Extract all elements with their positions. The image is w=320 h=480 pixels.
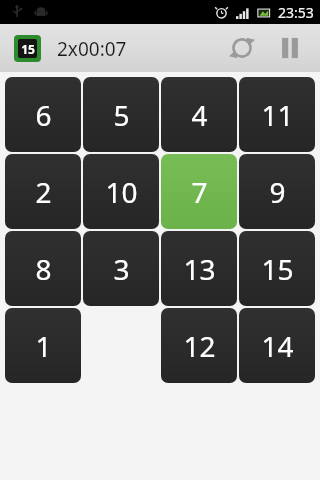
staticText: 4: [191, 96, 208, 134]
button[interactable]: 5: [83, 77, 159, 152]
button[interactable]: 2: [5, 154, 81, 229]
button[interactable]: 14: [239, 308, 315, 383]
button[interactable]: 6: [5, 77, 81, 152]
staticText: 14: [261, 327, 294, 365]
button[interactable]: 10: [83, 154, 159, 229]
staticText: 3: [113, 250, 130, 288]
staticText: 8: [35, 250, 52, 288]
button[interactable]: 7: [161, 154, 237, 229]
staticText: 5: [113, 96, 130, 134]
staticText: 6: [35, 96, 52, 134]
button[interactable]: 1: [5, 308, 81, 383]
staticText: 7: [191, 173, 208, 211]
button[interactable]: Restart: [218, 24, 266, 72]
button[interactable]: 11: [239, 77, 315, 152]
staticText: 10: [105, 173, 138, 211]
staticText: 15: [261, 250, 294, 288]
staticText: 12: [183, 327, 216, 365]
staticText: 23:53: [278, 3, 314, 22]
button[interactable]: 15: [239, 231, 315, 306]
button[interactable]: 12: [161, 308, 237, 383]
button[interactable]: 13: [161, 231, 237, 306]
staticText: 11: [261, 96, 294, 134]
button[interactable]: 9: [239, 154, 315, 229]
staticText: 1: [35, 327, 52, 365]
button[interactable]: 8: [5, 231, 81, 306]
button[interactable]: 3: [83, 231, 159, 306]
button[interactable]: 15: [0, 29, 135, 68]
button[interactable]: Pause: [266, 24, 314, 72]
staticText: 13: [183, 250, 216, 288]
staticText: 2: [35, 173, 52, 211]
staticText: 9: [269, 173, 286, 211]
staticText: 15: [21, 41, 35, 57]
staticText: 2x00:07: [57, 36, 127, 62]
button[interactable]: 4: [161, 77, 237, 152]
